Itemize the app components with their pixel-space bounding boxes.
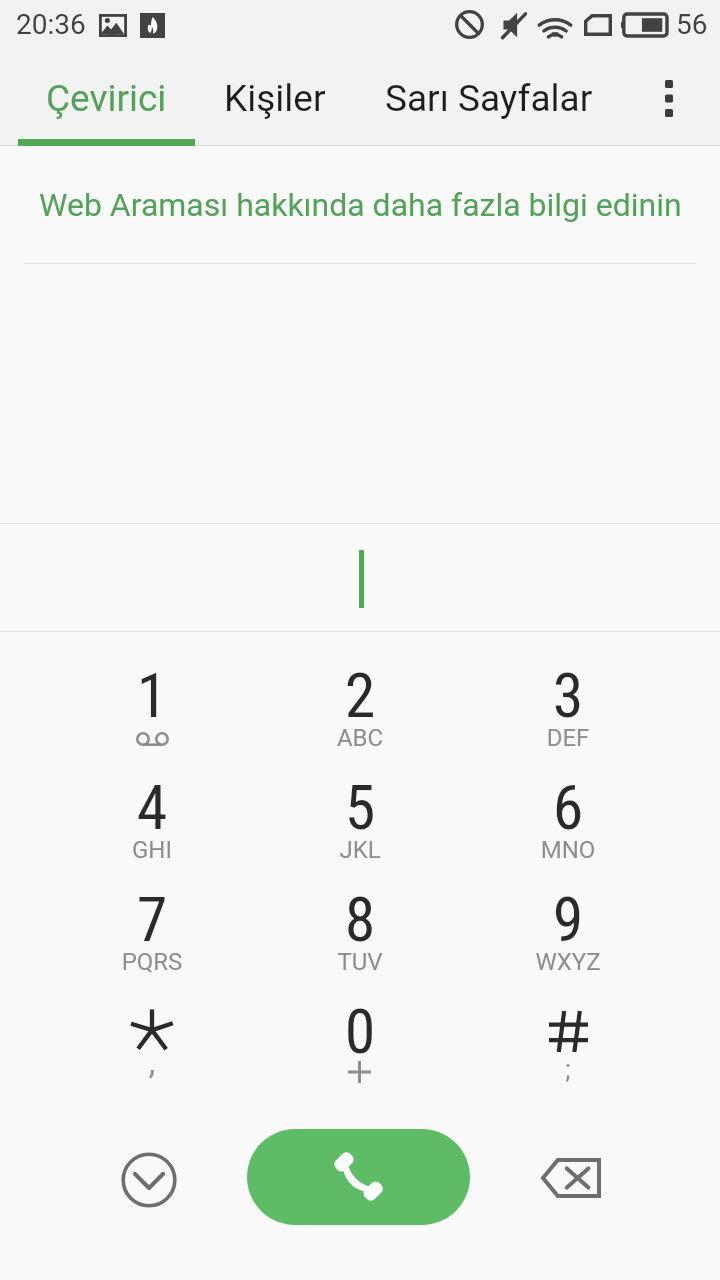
staticText: MNO <box>464 836 672 864</box>
button[interactable]: 6 <box>464 744 672 856</box>
button[interactable]: 9 <box>464 856 672 968</box>
button[interactable]: Çevirici <box>0 48 213 146</box>
staticText: 5 <box>256 771 464 844</box>
button[interactable]: Kişiler <box>213 48 337 146</box>
staticText: 4 <box>48 771 256 844</box>
button[interactable]: ; <box>464 968 672 1080</box>
button[interactable]: Web Araması hakkında daha fazla bilgi ed… <box>0 146 720 263</box>
staticText: 0 <box>256 995 464 1068</box>
button[interactable]: Call <box>247 1129 470 1225</box>
staticText: 3 <box>464 659 672 732</box>
button[interactable]: 8 <box>256 856 464 968</box>
button[interactable]: 5 <box>256 744 464 856</box>
staticText: Kişiler <box>224 77 326 120</box>
staticText: Sarı Sayfalar <box>385 77 593 120</box>
button[interactable]: Hide keypad <box>121 1152 177 1208</box>
button[interactable]: , <box>48 968 256 1080</box>
button[interactable]: Backspace <box>541 1158 601 1198</box>
staticText: JKL <box>256 836 464 864</box>
staticText: 2 <box>256 659 464 732</box>
staticText: WXYZ <box>464 948 672 976</box>
staticText: DEF <box>464 724 672 752</box>
button[interactable]: 4 <box>48 744 256 856</box>
staticText: ABC <box>256 724 464 752</box>
staticText: GHI <box>48 836 256 864</box>
staticText: , <box>48 1043 256 1082</box>
staticText: 6 <box>464 771 672 844</box>
button[interactable]: 1 <box>48 632 256 744</box>
button[interactable]: 7 <box>48 856 256 968</box>
staticText: 20:36 <box>16 8 86 41</box>
staticText: Web Araması hakkında daha fazla bilgi ed… <box>39 186 682 224</box>
staticText: 1 <box>48 659 256 732</box>
staticText: TUV <box>256 948 464 976</box>
staticText: Çevirici <box>46 77 167 120</box>
button[interactable]: 3 <box>464 632 672 744</box>
staticText: 7 <box>48 883 256 956</box>
button[interactable]: More options <box>641 48 720 146</box>
staticText: 9 <box>464 883 672 956</box>
button[interactable]: 0 <box>256 968 464 1080</box>
staticText: PQRS <box>48 948 256 976</box>
staticText: ; <box>464 1055 672 1084</box>
button[interactable]: Sarı Sayfalar <box>337 48 641 146</box>
button[interactable]: 2 <box>256 632 464 744</box>
staticText: 8 <box>256 883 464 956</box>
staticText: 56 <box>676 8 708 41</box>
